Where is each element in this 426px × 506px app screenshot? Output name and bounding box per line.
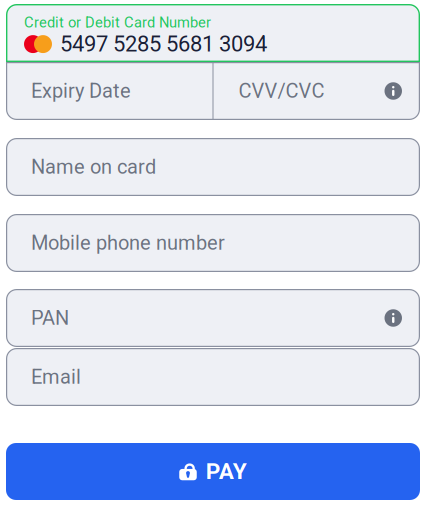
staticText: CVV/CVC	[238, 79, 324, 103]
staticText: Name on card	[31, 155, 156, 179]
button[interactable]: CVV/CVC	[213, 62, 420, 120]
staticText: 5497 5285 5681 3094	[60, 31, 267, 57]
button[interactable]: Mobile phone number	[6, 214, 420, 272]
staticText: PAN	[31, 306, 69, 330]
button[interactable]: Expiry Date	[6, 62, 212, 120]
staticText: Email	[31, 365, 81, 389]
button[interactable]: PAY	[6, 443, 420, 500]
button[interactable]: Credit or Debit Card Number	[6, 4, 420, 62]
staticText: PAY	[206, 458, 247, 485]
staticText: Expiry Date	[31, 79, 131, 103]
button[interactable]: Email	[6, 348, 420, 406]
staticText: Credit or Debit Card Number	[24, 14, 211, 31]
staticText: Mobile phone number	[31, 231, 225, 255]
button[interactable]: Name on card	[6, 138, 420, 196]
button[interactable]: PAN	[6, 289, 420, 347]
